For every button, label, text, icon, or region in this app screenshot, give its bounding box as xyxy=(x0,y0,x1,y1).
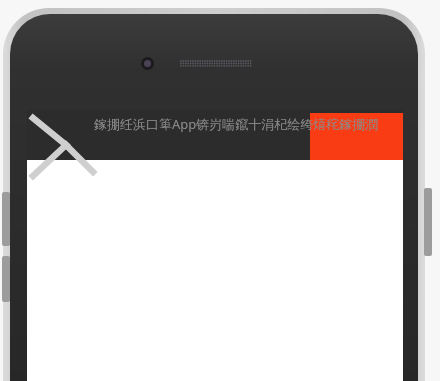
button[interactable]: Volume up xyxy=(2,192,10,246)
button[interactable]: Next xyxy=(25,112,97,184)
button[interactable]: Power xyxy=(424,188,432,256)
button[interactable] xyxy=(310,113,403,160)
button[interactable]: Volume down xyxy=(2,256,10,302)
staticText: 鎵掤纴浜口箄App锛岃喘鑹十涓杞绘绔熺秺鎵掤潤 xyxy=(94,115,400,133)
